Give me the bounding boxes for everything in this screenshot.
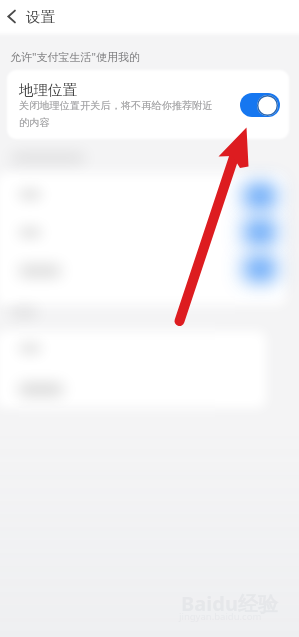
staticText: 关闭地理位置开关后，将不再给你推荐附近的内容 — [19, 99, 222, 129]
button[interactable]: 地理位置 — [7, 70, 289, 139]
staticText: Baidu经验 — [181, 590, 278, 617]
staticText: 允许"支付宝生活"使用我的 — [10, 49, 140, 64]
button[interactable]: Location toggle — [240, 93, 280, 117]
staticText: 地理位置 — [19, 81, 77, 99]
staticText: 设置 — [26, 8, 55, 26]
button[interactable]: Back — [0, 0, 23, 33]
